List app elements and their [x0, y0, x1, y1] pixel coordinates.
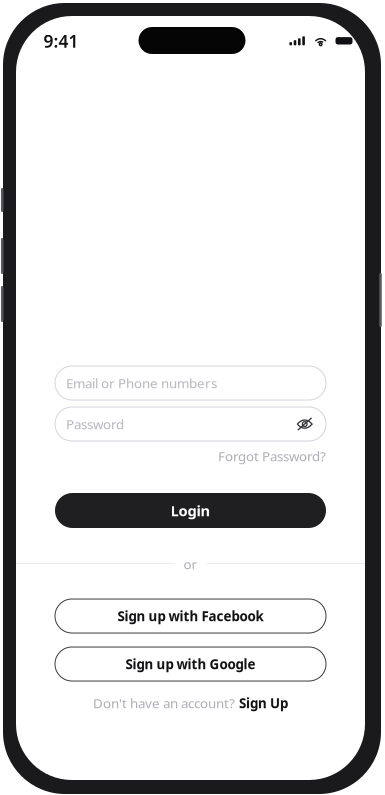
staticText: Don't have an account? — [93, 694, 235, 712]
staticText: Login — [170, 501, 210, 520]
staticText: Sign Up — [239, 694, 288, 712]
button[interactable]: Login — [55, 493, 326, 528]
staticText: Sign up with Google — [125, 655, 255, 673]
button[interactable]: Sign up with Facebook — [55, 599, 326, 633]
staticText: or — [183, 555, 197, 573]
staticText: Forgot Password? — [218, 447, 326, 465]
staticText: Email or Phone numbers — [66, 374, 217, 392]
button[interactable]: Forgot Password? — [176, 447, 326, 465]
staticText: Password — [66, 415, 124, 433]
button[interactable]: Don't have an account? — [55, 694, 326, 712]
staticText: 9:41 — [43, 29, 78, 52]
button[interactable]: Sign up with Google — [55, 647, 326, 681]
staticText: Sign up with Facebook — [117, 607, 263, 625]
